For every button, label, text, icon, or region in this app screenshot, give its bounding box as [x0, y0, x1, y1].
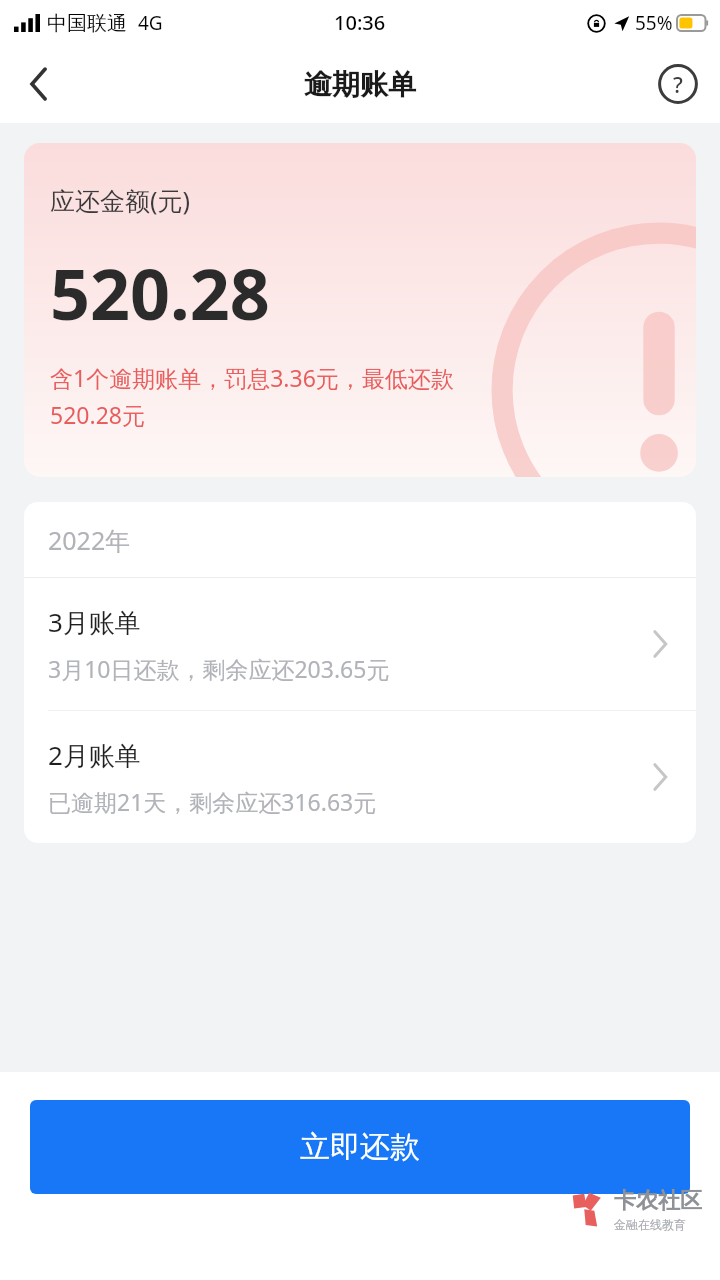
staticText: 520.28: [50, 245, 270, 340]
staticText: 3月10日还款，剩余应还203.65元: [48, 653, 390, 684]
staticText: 金融在线教育: [614, 1217, 686, 1232]
staticText: 应还金额(元): [50, 183, 191, 217]
staticText: 逾期账单: [304, 67, 416, 102]
button[interactable]: Back: [8, 53, 70, 115]
staticText: ?: [673, 69, 683, 99]
button[interactable]: 立即还款: [30, 1100, 690, 1194]
staticText: 520.28元: [50, 399, 145, 430]
staticText: 4G: [138, 10, 163, 36]
button[interactable]: 3月账单: [24, 578, 696, 710]
staticText: 已逾期21天，剩余应还316.63元: [48, 786, 377, 817]
staticText: 卡农社区: [614, 1187, 702, 1215]
staticText: 2月账单: [48, 737, 141, 773]
staticText: 3月账单: [48, 604, 141, 640]
staticText: 10:36: [334, 9, 386, 36]
staticText: 55%: [635, 10, 673, 36]
button[interactable]: 2月账单: [24, 711, 696, 843]
staticText: 2022年: [48, 523, 131, 557]
staticText: 中国联通: [47, 11, 127, 36]
button[interactable]: Help: [648, 54, 708, 114]
staticText: 立即还款: [300, 1128, 420, 1166]
staticText: 含1个逾期账单，罚息3.36元，最低还款: [50, 362, 454, 393]
button[interactable]: 应还金额(元): [24, 143, 696, 477]
